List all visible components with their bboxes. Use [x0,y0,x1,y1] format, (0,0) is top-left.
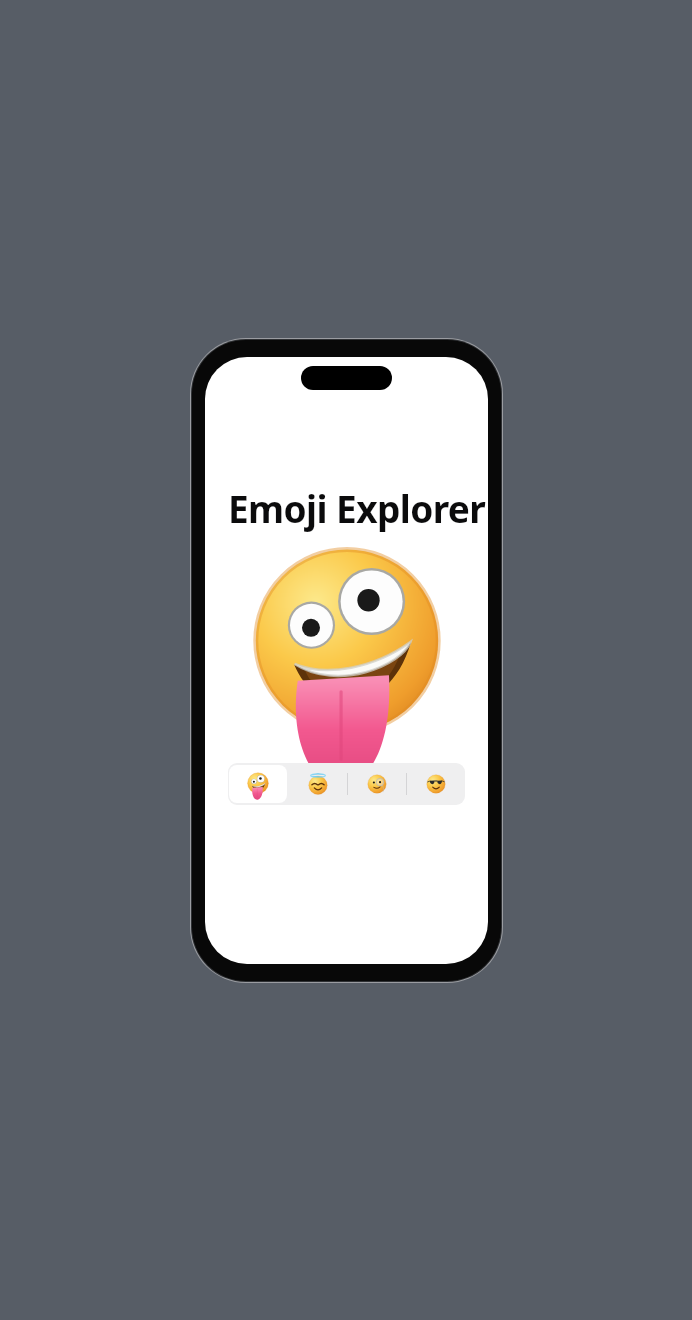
button[interactable]: Face with monocle [347,763,406,805]
button[interactable]: Smiling face with sunglasses [406,763,465,805]
staticText: Emoji Explorer [228,483,486,533]
button[interactable]: Smiling face with halo [288,763,347,805]
button[interactable]: Zany face [228,763,288,805]
